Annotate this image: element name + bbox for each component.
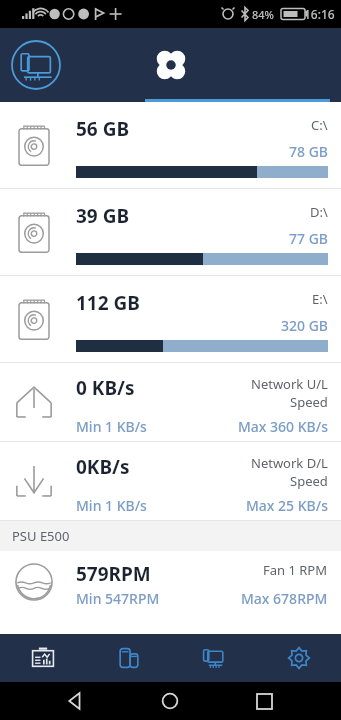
staticText: 320 GB bbox=[76, 316, 328, 335]
button[interactable]: Download bbox=[0, 442, 341, 520]
staticText: 112 GB bbox=[76, 290, 140, 316]
staticText: Max 678RPM bbox=[241, 589, 328, 608]
staticText: Max 360 KB/s bbox=[238, 417, 328, 436]
staticText: PSU E500 bbox=[12, 527, 70, 545]
button[interactable]: 56 GB bbox=[0, 102, 341, 188]
staticText: Network U/L bbox=[251, 375, 328, 393]
staticText: 78 GB bbox=[76, 142, 328, 161]
staticText: 579RPM bbox=[76, 561, 151, 587]
button[interactable]: PSU E500 bbox=[0, 521, 341, 551]
staticText: 39 GB bbox=[76, 203, 130, 229]
button[interactable]: 112 GB bbox=[0, 276, 341, 362]
staticText: Fan 1 RPM bbox=[263, 561, 328, 579]
button[interactable]: 39 GB bbox=[0, 189, 341, 275]
button[interactable]: Computer bbox=[171, 634, 256, 682]
button[interactable]: Back bbox=[59, 684, 93, 718]
button[interactable]: Fan bbox=[0, 551, 341, 613]
staticText: Speed bbox=[290, 393, 328, 411]
staticText: Speed bbox=[290, 472, 328, 490]
other: Fan bbox=[12, 560, 56, 604]
button[interactable]: Computer bbox=[10, 39, 62, 91]
button[interactable]: Recents bbox=[247, 684, 281, 718]
button[interactable]: Settings bbox=[151, 45, 191, 85]
staticText: E:\ bbox=[312, 290, 328, 308]
staticText: D:\ bbox=[310, 203, 328, 221]
button[interactable]: Reports bbox=[0, 634, 86, 682]
staticText: Network D/L bbox=[251, 454, 328, 472]
staticText: Min 547RPM bbox=[76, 589, 160, 608]
staticText: 56 GB bbox=[76, 116, 130, 142]
button[interactable]: Home bbox=[153, 684, 187, 718]
button[interactable]: Upload bbox=[0, 363, 341, 441]
button[interactable]: Settings bbox=[256, 634, 341, 682]
other: Download bbox=[12, 459, 56, 503]
staticText: 84% bbox=[252, 7, 274, 22]
staticText: C:\ bbox=[311, 116, 328, 134]
staticText: 16:16 bbox=[304, 6, 335, 22]
staticText: 0 KB/s bbox=[76, 375, 135, 401]
staticText: Min 1 KB/s bbox=[76, 417, 147, 436]
other: Upload bbox=[12, 380, 56, 424]
staticText: 77 GB bbox=[76, 229, 328, 248]
staticText: Max 25 KB/s bbox=[246, 496, 328, 515]
staticText: Min 1 KB/s bbox=[76, 496, 147, 515]
button[interactable]: Devices bbox=[86, 634, 171, 682]
staticText: 0KB/s bbox=[76, 454, 130, 480]
